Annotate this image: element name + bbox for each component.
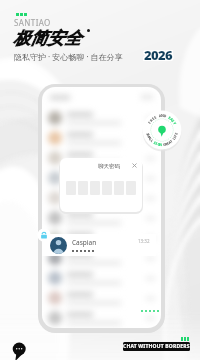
staticText: E xyxy=(167,115,172,121)
staticText: L xyxy=(148,137,154,142)
staticText: 2026 xyxy=(143,46,172,64)
staticText xyxy=(166,114,169,119)
staticText: Caspian xyxy=(72,238,97,247)
staticText: E xyxy=(166,140,170,146)
staticText: R xyxy=(164,141,168,147)
staticText: L xyxy=(149,138,155,144)
staticText: D xyxy=(163,113,167,118)
staticText: 2026 xyxy=(144,47,173,65)
button[interactable]: CHAT WITHOUT BORDERS xyxy=(123,342,190,351)
staticText: L xyxy=(171,136,177,141)
staticText: S xyxy=(145,132,151,136)
staticText: E xyxy=(150,116,156,121)
staticText xyxy=(152,140,156,144)
staticText: 2026 xyxy=(144,46,173,64)
staticText: 2026 xyxy=(145,45,174,63)
staticText: A xyxy=(167,139,172,145)
staticText: 2026 xyxy=(144,45,173,63)
staticText: N xyxy=(161,113,164,118)
staticText: I xyxy=(155,141,158,146)
staticText: N xyxy=(159,142,162,147)
button[interactable]: Close xyxy=(132,163,137,168)
staticText: M xyxy=(146,133,152,139)
staticText: 13:32 xyxy=(138,238,150,244)
staticText: S xyxy=(170,118,176,123)
staticText: Y xyxy=(172,121,178,126)
staticText: E xyxy=(153,114,158,120)
staticText xyxy=(156,114,159,119)
staticText: F xyxy=(147,121,152,125)
staticText: 2026 xyxy=(143,47,172,65)
staticText: 隐私守护 · 安心畅聊 · 自在分享 xyxy=(14,51,123,62)
staticText: G xyxy=(157,141,161,147)
staticText: 2026 xyxy=(145,47,174,65)
staticText: A xyxy=(158,113,162,118)
staticText: G xyxy=(163,142,166,147)
staticText: 2026 xyxy=(145,46,174,64)
staticText: E xyxy=(173,131,179,136)
staticText: 聊天密码 xyxy=(98,163,120,170)
staticText: S xyxy=(153,140,157,145)
staticText: CHAT WITHOUT BORDERS xyxy=(123,343,190,350)
staticText: T xyxy=(168,138,174,144)
staticText: SANTIAO xyxy=(14,17,51,28)
staticText: 极简安全 xyxy=(13,28,81,49)
staticText: R xyxy=(148,117,154,123)
staticText xyxy=(170,138,175,142)
button[interactable]: Chat xyxy=(11,341,28,358)
staticText: A xyxy=(169,116,174,122)
staticText: I xyxy=(172,135,177,140)
staticText: 2026 xyxy=(143,45,172,63)
button[interactable]: Caspian xyxy=(42,234,156,256)
staticText: A xyxy=(147,135,153,140)
staticText: F xyxy=(173,134,178,138)
